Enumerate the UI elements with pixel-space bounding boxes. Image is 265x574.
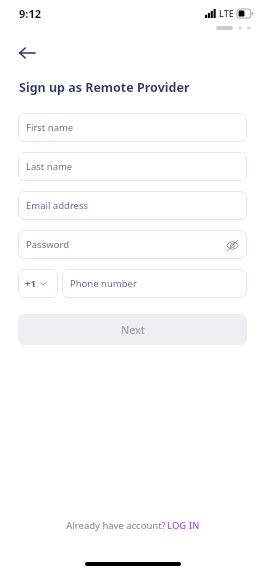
button[interactable]: Last name	[18, 152, 247, 181]
button[interactable]: Next	[18, 314, 247, 345]
button[interactable]: Show password	[224, 237, 240, 253]
staticText: LTE	[219, 7, 234, 19]
staticText: 9:12	[19, 6, 41, 21]
button[interactable]: First name	[18, 113, 247, 142]
button[interactable]: LOG IN	[167, 519, 200, 532]
staticText: LOG IN	[167, 519, 200, 532]
button[interactable]: Password	[18, 230, 247, 259]
staticText: Already have account?	[65, 519, 167, 532]
button[interactable]: +1	[18, 269, 58, 298]
staticText: First name	[26, 121, 74, 134]
button[interactable]: Email address	[18, 191, 247, 220]
staticText: Phone number	[70, 277, 137, 290]
button[interactable]: Back	[12, 38, 42, 68]
staticText: Last name	[26, 160, 73, 173]
staticText: Email address	[26, 199, 89, 212]
staticText: Next	[121, 323, 145, 337]
staticText: Sign up as Remote Provider	[19, 79, 190, 96]
staticText: +1	[25, 277, 36, 290]
button[interactable]: Phone number	[62, 269, 247, 298]
staticText: Password	[26, 238, 69, 251]
